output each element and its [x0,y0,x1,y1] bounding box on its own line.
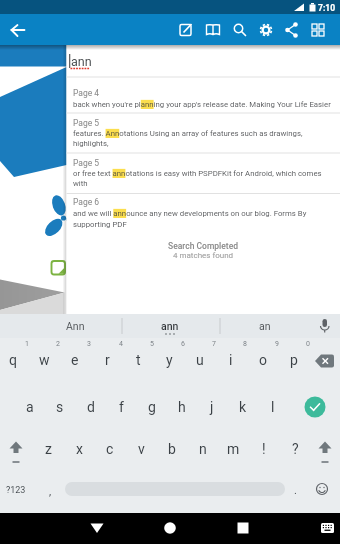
staticText: 9 [275,340,279,348]
button[interactable] [66,78,340,114]
button[interactable] [65,478,285,500]
button[interactable] [228,513,258,544]
button[interactable] [300,392,330,422]
button[interactable]: ann [125,314,215,338]
button[interactable]: k [228,385,258,428]
button[interactable] [82,513,112,544]
button[interactable]: n [188,428,218,469]
button[interactable] [2,430,30,468]
button[interactable] [228,19,252,43]
staticText: . [294,484,297,497]
button[interactable]: y [154,338,184,381]
staticText: s [56,399,64,415]
staticText: ann [71,54,92,69]
staticText: back when you're planning your app's rel… [73,100,331,109]
button[interactable]: j [197,385,227,428]
button[interactable]: ? [280,428,310,469]
button[interactable] [1,470,30,510]
button[interactable]: z [33,428,63,469]
button[interactable] [66,45,340,77]
staticText: r [105,352,110,368]
button[interactable]: l [258,385,288,428]
staticText: ?123 [6,485,26,496]
button[interactable]: p [279,338,309,381]
staticText: e [71,352,79,368]
button[interactable] [6,19,30,43]
staticText: w [39,352,50,368]
button[interactable]: h [167,385,197,428]
button[interactable]: s [45,385,75,428]
staticText: a [26,399,34,415]
staticText: and we will announce any new development… [73,209,307,218]
staticText: u [196,352,204,368]
staticText: y [166,352,173,368]
button[interactable] [314,513,340,544]
button[interactable]: g [137,385,167,428]
staticText: Page 6 [73,197,100,207]
staticText: Search Completed [168,241,239,251]
staticText: m [227,441,240,457]
button[interactable] [282,474,308,506]
staticText: 0 [306,340,310,348]
staticText: ann [161,320,179,332]
button[interactable] [66,193,340,235]
button[interactable]: x [64,428,94,469]
staticText: 6 [181,340,185,348]
staticText: k [239,399,247,415]
staticText: Page 5 [73,158,100,168]
button[interactable] [155,513,185,544]
button[interactable] [174,19,198,43]
staticText: o [259,352,267,368]
button[interactable] [280,19,304,43]
button[interactable]: m [218,428,248,469]
button[interactable]: e [60,338,90,381]
staticText: 3 [87,340,91,348]
staticText: Page 4 [73,88,100,98]
staticText: l [271,399,275,415]
button[interactable] [310,340,340,383]
staticText: supporting PDF [73,220,127,229]
button[interactable]: ! [249,428,279,469]
staticText: Page 5 [73,118,100,128]
staticText: x [76,441,83,457]
button[interactable]: r [92,338,122,381]
staticText: 1 [25,340,29,348]
button[interactable] [36,474,62,506]
button[interactable]: an [222,314,308,338]
staticText: z [45,441,52,457]
staticText: q [9,352,17,368]
button[interactable] [66,155,340,192]
button[interactable]: Ann [30,314,120,338]
staticText: n [199,441,207,457]
staticText: g [148,399,156,415]
button[interactable] [311,430,339,468]
button[interactable]: v [126,428,156,469]
staticText: or free text annotations is easy with PS… [73,169,322,178]
button[interactable]: t [123,338,153,381]
button[interactable]: u [185,338,215,381]
button[interactable]: a [15,385,45,428]
staticText: with [73,179,88,188]
button[interactable]: i [216,338,246,381]
button[interactable]: q [0,338,28,381]
staticText: 8 [243,340,247,348]
staticText: 4 matches found [173,251,234,260]
button[interactable]: w [29,338,59,381]
staticText: features. Annotations Using an array of … [73,129,303,138]
button[interactable]: c [95,428,125,469]
button[interactable] [254,19,278,43]
button[interactable]: o [248,338,278,381]
button[interactable] [308,474,336,506]
button[interactable]: d [76,385,106,428]
button[interactable]: b [157,428,187,469]
staticText: d [87,399,95,415]
button[interactable] [201,19,225,43]
staticText: b [168,441,176,457]
button[interactable]: f [106,385,136,428]
staticText: 7 [212,340,216,348]
button[interactable] [306,19,330,43]
button[interactable] [66,115,340,154]
staticText: f [119,399,124,415]
staticText: , [49,485,52,498]
staticText: c [106,441,114,457]
